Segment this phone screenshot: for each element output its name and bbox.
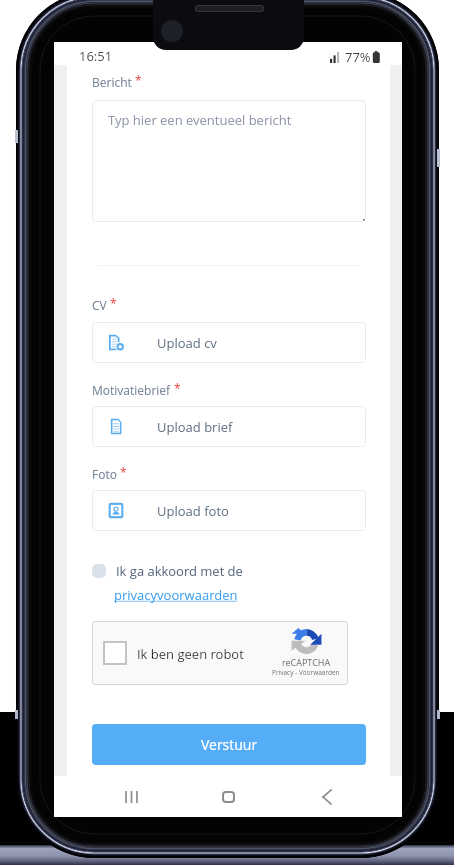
button[interactable]: Home xyxy=(193,776,263,817)
staticText: * xyxy=(135,72,142,88)
staticText: Ik ben geen robot xyxy=(137,645,244,663)
staticText: Verstuur xyxy=(201,735,258,754)
staticText: 77% xyxy=(345,48,371,66)
button[interactable]: Upload brief xyxy=(92,406,366,447)
staticText: Upload brief xyxy=(157,418,233,436)
staticText: Upload cv xyxy=(157,334,217,352)
staticText: Bericht xyxy=(92,74,132,90)
staticText: CV xyxy=(92,297,107,313)
staticText: reCAPTCHA xyxy=(282,656,331,668)
staticText: Upload foto xyxy=(157,502,229,520)
button[interactable]: Upload cv xyxy=(92,322,366,363)
staticText: Typ hier een eventueel bericht xyxy=(108,111,292,129)
button[interactable]: privacyvoorwaarden xyxy=(114,586,238,604)
button[interactable]: Ik ben geen robot xyxy=(92,621,348,685)
staticText: 16:51 xyxy=(79,47,113,65)
button[interactable]: Typ hier een eventueel bericht xyxy=(92,100,366,222)
button[interactable]: Recent apps xyxy=(96,776,166,817)
staticText: Foto xyxy=(92,466,117,482)
button[interactable]: Verstuur xyxy=(92,724,366,765)
staticText: * xyxy=(120,464,127,480)
staticText: Privacy - Voorwaarden xyxy=(272,668,340,677)
button[interactable]: Upload foto xyxy=(92,490,366,531)
button[interactable]: Back xyxy=(292,776,362,817)
button[interactable]: Ik ga akkoord met de xyxy=(92,562,243,580)
staticText: * xyxy=(110,295,117,311)
staticText: Motivatiebrief xyxy=(92,382,171,398)
staticText: * xyxy=(174,380,181,396)
staticText: Ik ga akkoord met de xyxy=(116,562,243,580)
